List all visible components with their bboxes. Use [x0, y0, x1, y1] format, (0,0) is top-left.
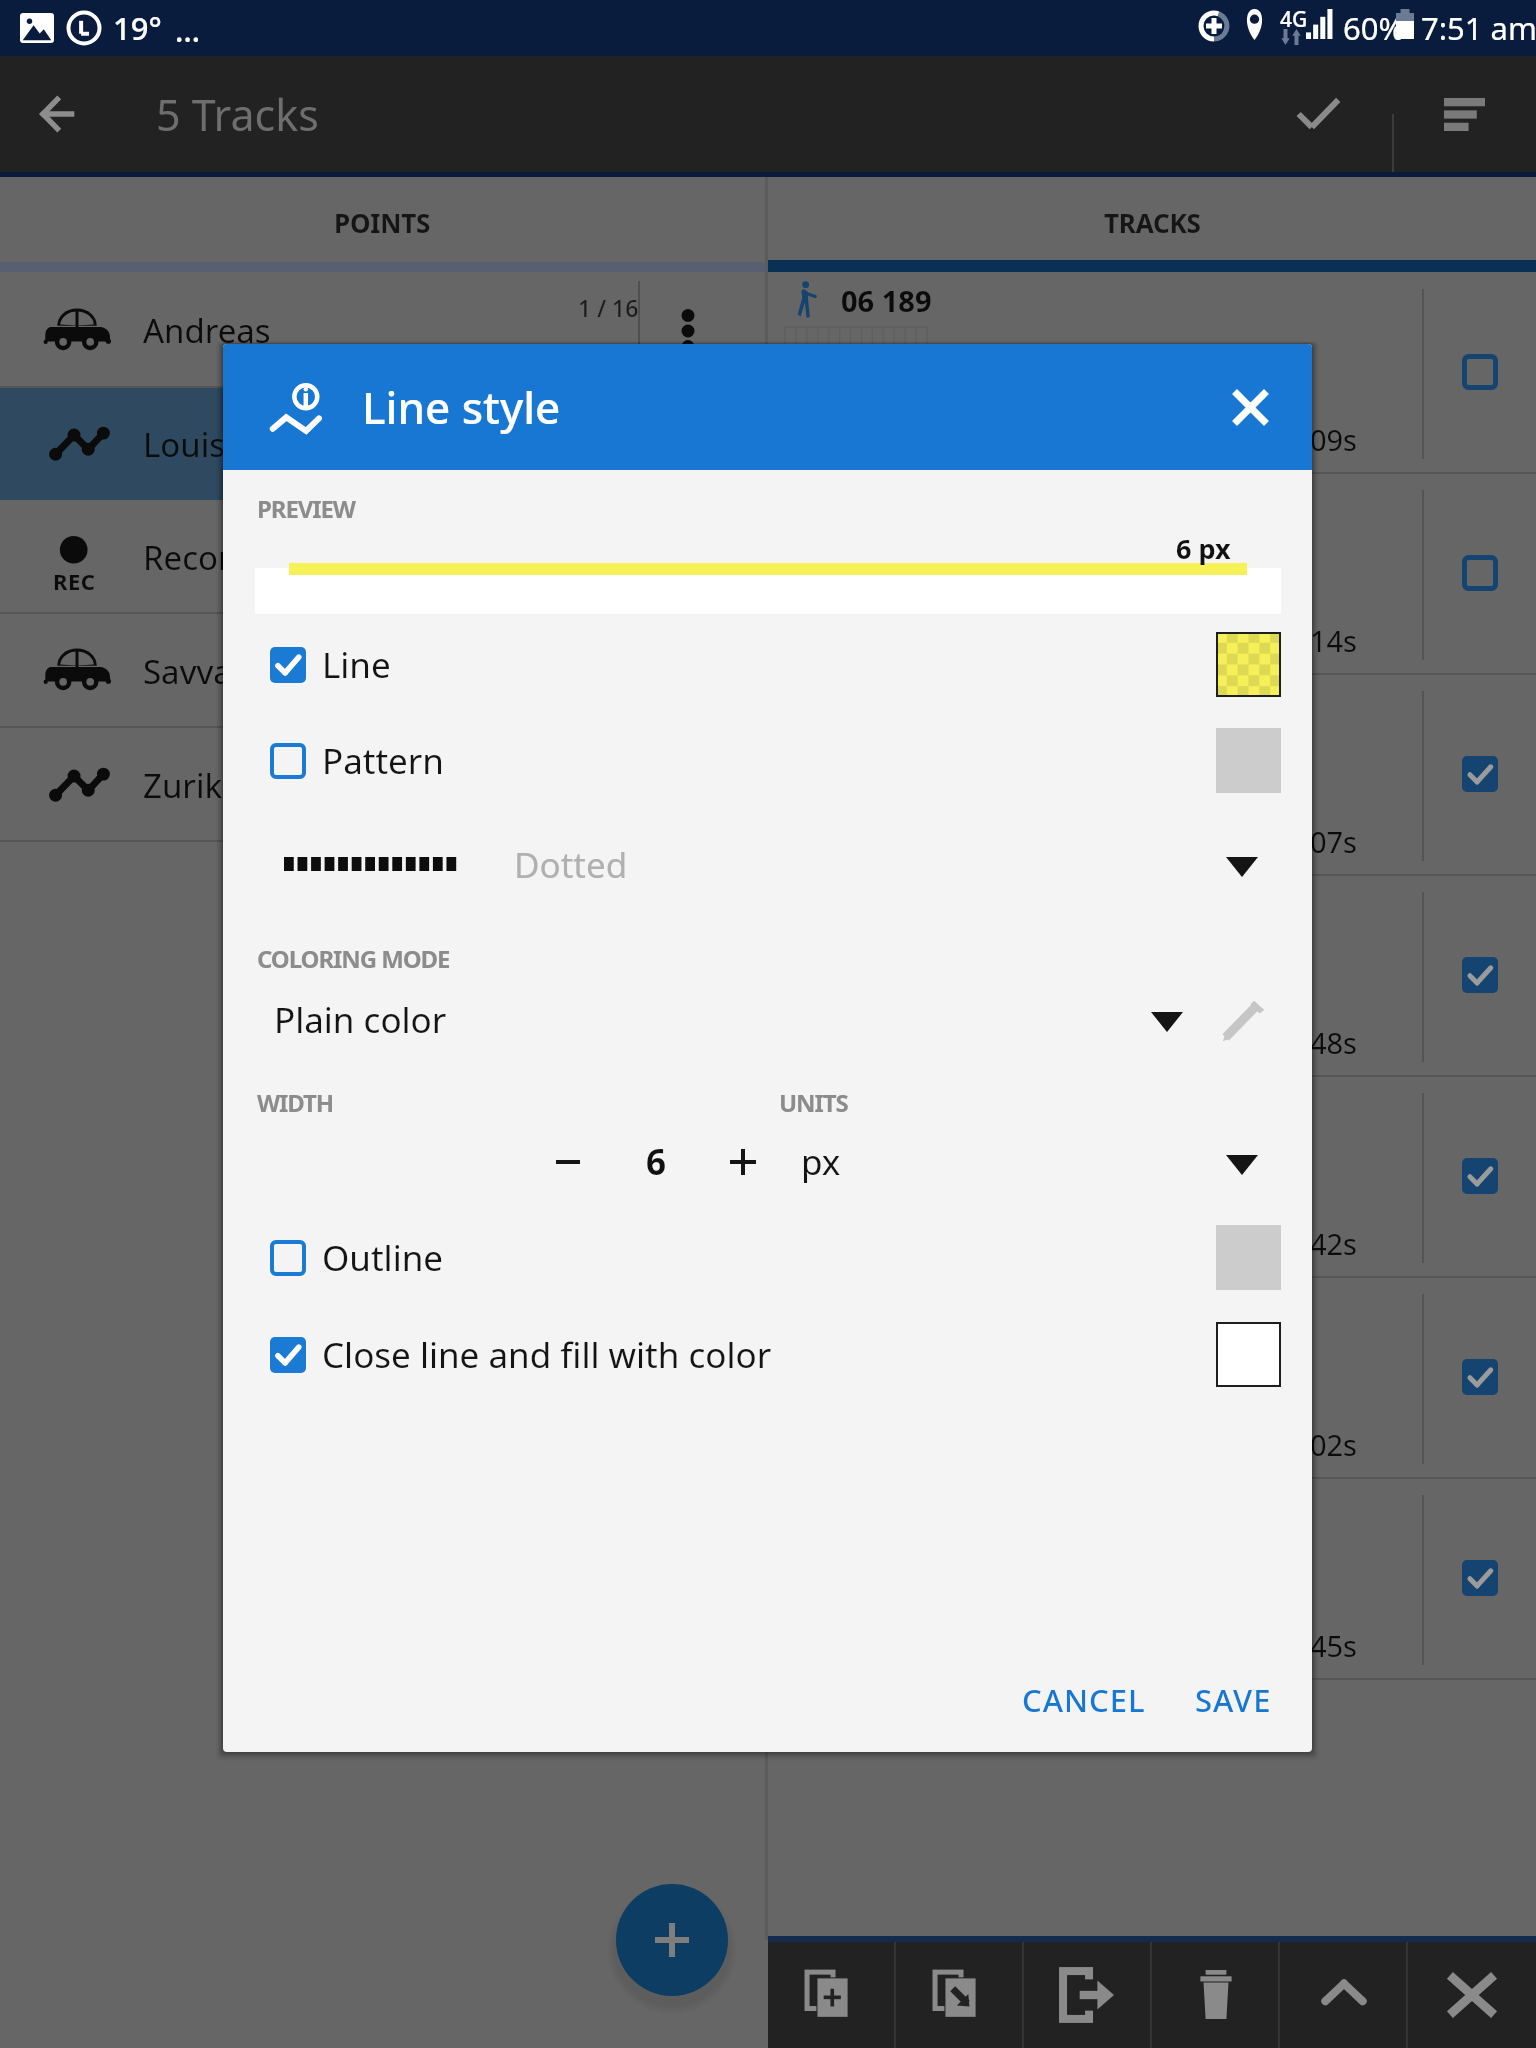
button[interactable]: Close line and fill with color colour [1216, 1322, 1281, 1387]
button[interactable]: CANCEL [1008, 1660, 1160, 1740]
button[interactable]: Select 06 184 [1424, 1278, 1536, 1479]
button[interactable]: 06 184 [768, 1278, 1536, 1479]
button[interactable]: Andreas [0, 273, 765, 388]
staticText: 00:45s [1269, 1626, 1358, 1665]
button[interactable]: Edit color [1208, 984, 1280, 1056]
staticText: 06 185 [841, 1085, 932, 1124]
staticText: 6 px [1176, 530, 1231, 567]
staticText: … [175, 9, 201, 51]
button[interactable]: Select 06 187 [1424, 675, 1536, 876]
button[interactable]: Line colour [1216, 632, 1281, 697]
button[interactable]: Select 06 183 [1424, 1479, 1536, 1680]
button[interactable]: Collapse [1280, 1942, 1408, 2048]
staticText: 19° [113, 7, 162, 49]
button[interactable]: Confirm [1260, 56, 1376, 172]
button[interactable]: Select 06 189 [1424, 273, 1536, 474]
button[interactable]: REC [0, 500, 765, 614]
staticText: 01:02s [1269, 1425, 1358, 1464]
button[interactable]: Select 06 188 [1424, 474, 1536, 675]
staticText: 4G [1280, 5, 1308, 34]
button[interactable]: SAVE [1185, 1660, 1281, 1740]
staticText: 1 / 16 [578, 292, 639, 323]
button[interactable]: Back [8, 56, 108, 172]
staticText: Line [322, 641, 391, 689]
staticText: TRACKS [1104, 205, 1201, 240]
staticText: 00:07s [1269, 822, 1358, 861]
staticText: 01:14s [1269, 621, 1358, 660]
staticText: Close line and fill with color [322, 1331, 772, 1379]
button[interactable]: Close line and fill with color [223, 1319, 1312, 1391]
staticText: Plain color [274, 996, 447, 1044]
staticText: WIDTH [257, 1086, 334, 1119]
button[interactable]: Louis [0, 388, 765, 500]
staticText: 06 189 [841, 281, 932, 320]
button[interactable]: Delete [1152, 1942, 1280, 2048]
button[interactable]: Add [616, 1884, 728, 1996]
staticText: COLORING MODE [257, 942, 450, 975]
button[interactable]: Decrease width [532, 1126, 604, 1198]
staticText: 00:09s [1269, 420, 1358, 459]
staticText: Dotted [514, 841, 628, 889]
staticText: SAVE [1195, 1679, 1272, 1721]
button[interactable]: POINTS [0, 177, 765, 267]
staticText: 6 [646, 1138, 667, 1186]
staticText: px [801, 1138, 841, 1186]
staticText: 5 Tracks [156, 85, 319, 144]
staticText: CANCEL [1022, 1679, 1146, 1721]
staticText: POINTS [334, 205, 431, 240]
staticText: 00:42s [1269, 1224, 1358, 1263]
button[interactable]: 06 188 [768, 474, 1536, 675]
button[interactable]: Copy [768, 1942, 896, 2048]
staticText: UNITS [779, 1086, 848, 1119]
button[interactable]: More options [640, 273, 765, 388]
button[interactable]: Sort [1400, 56, 1516, 172]
button[interactable]: Outline [223, 1222, 1312, 1294]
button[interactable]: Dotted [223, 829, 1312, 901]
staticText: Zuriko [143, 763, 242, 808]
button[interactable]: Plain color [223, 984, 1312, 1056]
button[interactable]: Export [1024, 1942, 1152, 2048]
staticText: Pattern [322, 737, 444, 785]
button[interactable]: Select 06 186 [1424, 876, 1536, 1077]
button[interactable]: Pattern [223, 725, 1312, 797]
button[interactable]: Select 06 185 [1424, 1077, 1536, 1278]
staticText: REC [53, 566, 96, 596]
button[interactable]: 06 189 [768, 273, 1536, 474]
button[interactable]: Close [1408, 1942, 1536, 2048]
staticText: Record [143, 535, 252, 580]
button[interactable]: Savva [0, 614, 765, 728]
button[interactable]: Increase width [707, 1126, 779, 1198]
staticText: Outline [322, 1234, 444, 1282]
staticText: 7:51 am [1421, 7, 1536, 49]
staticText: 60% [1343, 7, 1405, 49]
staticText: Louis [143, 422, 225, 467]
staticText: PREVIEW [257, 492, 355, 525]
staticText: Savva [143, 649, 232, 694]
button[interactable]: Zuriko [0, 728, 765, 842]
button[interactable]: Line [223, 629, 1312, 701]
button[interactable]: 06 187 [768, 675, 1536, 876]
button[interactable]: 06 186 [768, 876, 1536, 1077]
button[interactable]: Duplicate [896, 1942, 1024, 2048]
staticText: Andreas [143, 308, 271, 353]
button[interactable]: 06 185 [768, 1077, 1536, 1278]
staticText: Line style [362, 377, 561, 437]
button[interactable]: 06 183 [768, 1479, 1536, 1680]
button[interactable]: px [783, 1126, 1283, 1198]
staticText: 02:48s [1269, 1023, 1358, 1062]
button[interactable]: TRACKS [768, 177, 1536, 267]
button[interactable]: Close [1188, 344, 1312, 470]
